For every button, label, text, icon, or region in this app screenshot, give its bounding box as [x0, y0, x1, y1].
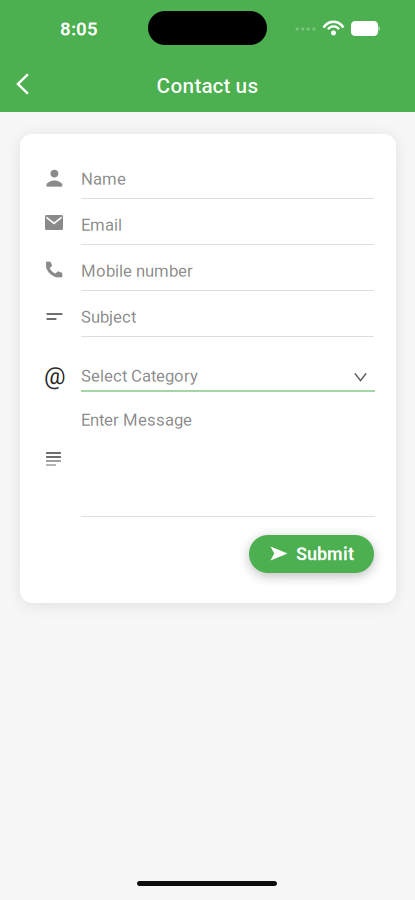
button[interactable]: Name: [45, 164, 375, 210]
staticText: Enter Message: [81, 410, 192, 430]
staticText: Subject: [81, 307, 136, 327]
staticText: Contact us: [156, 74, 258, 98]
button[interactable]: Back: [0, 61, 46, 107]
staticText: Name: [81, 169, 126, 189]
staticText: Email: [81, 215, 122, 235]
button[interactable]: Subject: [45, 302, 375, 348]
staticText: @: [44, 362, 66, 390]
staticText: Mobile number: [81, 261, 193, 281]
staticText: Submit: [296, 543, 354, 565]
button[interactable]: @: [45, 360, 375, 400]
button[interactable]: Submit: [249, 535, 374, 573]
staticText: 8:05: [60, 18, 98, 40]
staticText: Select Category: [81, 366, 198, 386]
button[interactable]: Mobile number: [45, 256, 375, 302]
button[interactable]: Email: [45, 210, 375, 256]
